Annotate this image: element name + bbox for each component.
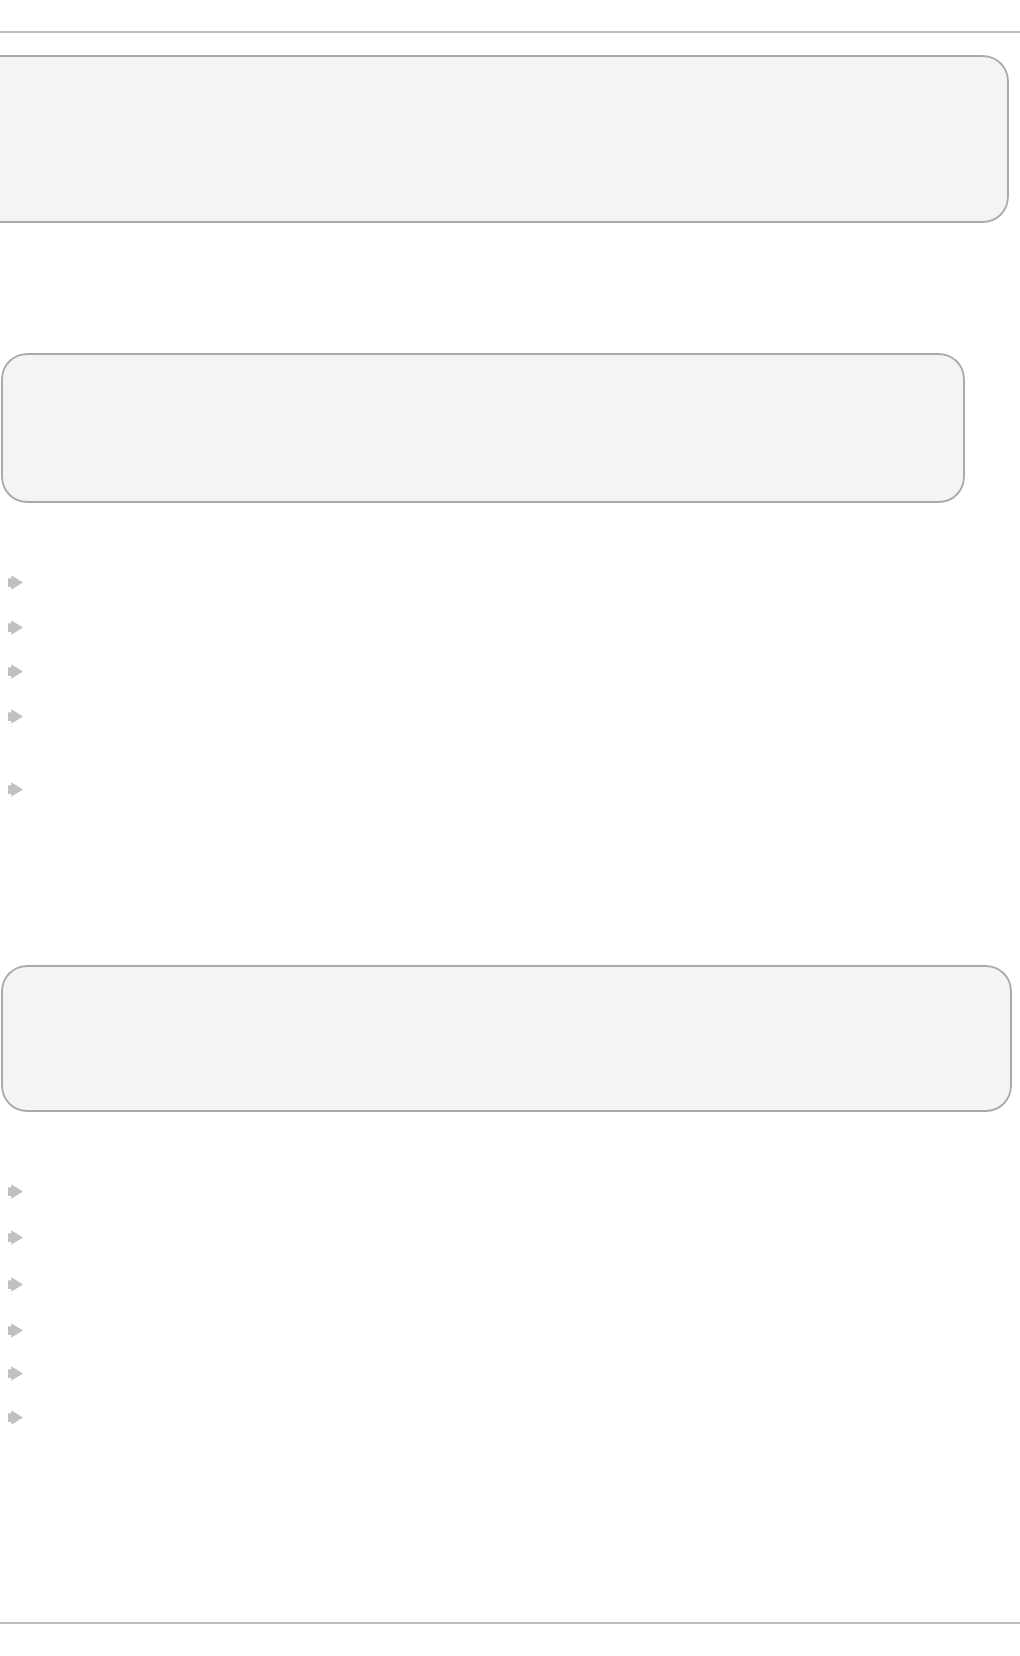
button[interactable]: List item [8,782,31,803]
button[interactable] [1,965,1012,1112]
button[interactable]: List item [8,1184,31,1205]
button[interactable] [0,55,1009,223]
button[interactable]: List item [8,1323,31,1344]
button[interactable]: List item [8,1410,31,1431]
button[interactable]: List item [8,664,31,685]
button[interactable] [1,353,965,503]
button[interactable]: List item [8,1366,31,1387]
button[interactable]: List item [8,1277,31,1298]
button[interactable]: List item [8,709,31,730]
button[interactable]: List item [8,620,31,641]
button[interactable]: List item [8,1230,31,1251]
button[interactable]: List item [8,575,31,596]
